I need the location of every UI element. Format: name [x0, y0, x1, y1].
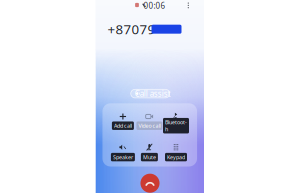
button[interactable]: Keypad — [163, 141, 189, 163]
staticText: Keypad — [167, 154, 185, 161]
button[interactable]: Mute — [136, 141, 162, 163]
button[interactable]: Add call — [110, 110, 136, 132]
button[interactable]: End call — [139, 173, 160, 193]
staticText: Mute — [143, 154, 156, 161]
button[interactable]: More options — [183, 0, 194, 11]
button[interactable]: Video call — [136, 110, 162, 132]
staticText: 00:06 — [143, 0, 165, 11]
staticText: Speaker — [113, 154, 133, 161]
staticText: Bluetooth — [165, 119, 187, 133]
button[interactable]: Speaker — [110, 141, 136, 163]
staticText: +87079 — [107, 20, 155, 38]
button[interactable]: Bluetooth — [163, 110, 189, 132]
button[interactable]: Call assist — [130, 89, 170, 99]
staticText: Add call — [114, 122, 132, 129]
staticText: Call assist — [135, 88, 171, 99]
staticText: Video call — [138, 122, 160, 129]
